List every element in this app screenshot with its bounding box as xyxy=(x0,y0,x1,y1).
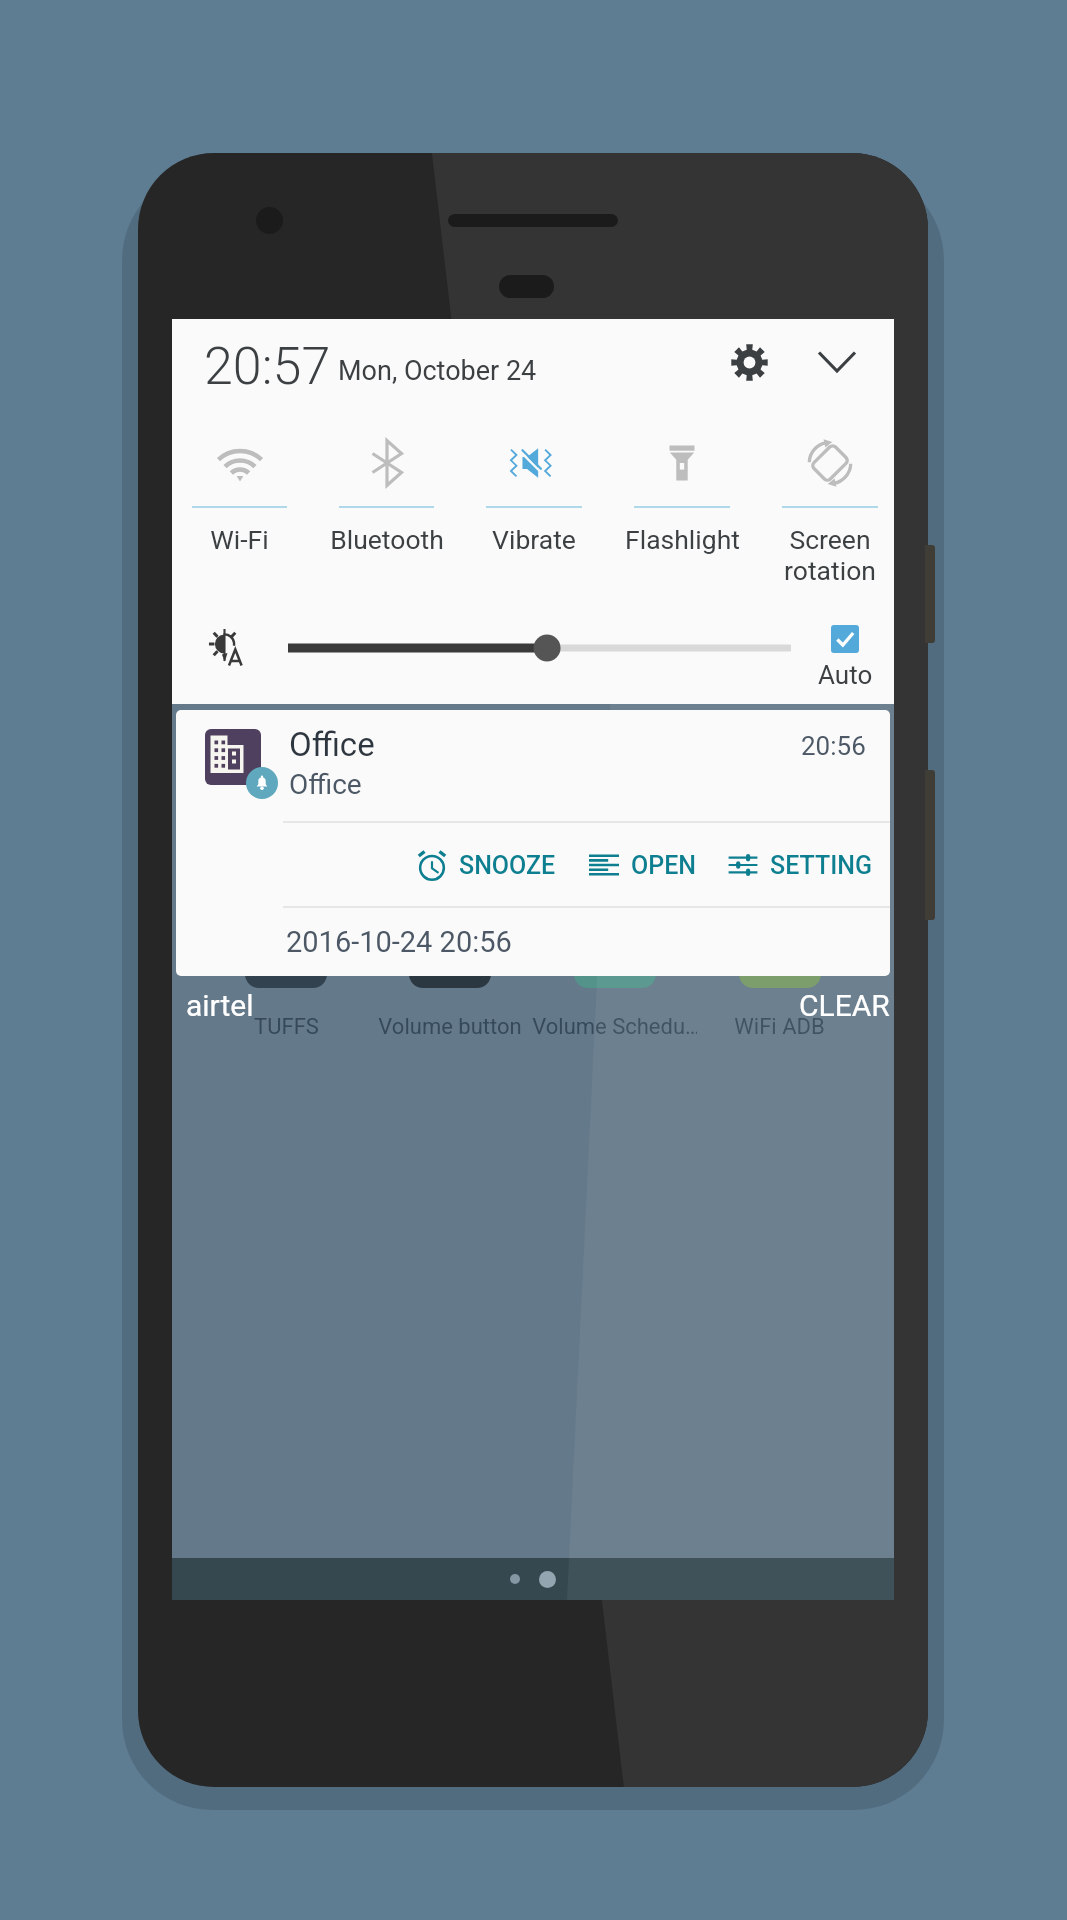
staticText: Vibrate xyxy=(492,524,576,555)
staticText: CLEAR xyxy=(799,988,890,1023)
button[interactable]: Bluetooth xyxy=(313,439,460,609)
button[interactable]: Screen rotation xyxy=(756,439,904,609)
staticText: airtel xyxy=(186,988,254,1023)
staticText: TUFFS xyxy=(254,1014,319,1040)
staticText: 20:56 xyxy=(801,731,866,761)
staticText: Office xyxy=(289,768,362,801)
button[interactable]: Flashlight xyxy=(608,439,756,609)
staticText: Bluetooth xyxy=(330,524,444,555)
button[interactable]: Auto xyxy=(797,609,893,697)
button[interactable]: Auto brightness xyxy=(192,609,258,689)
staticText: Wi-Fi xyxy=(210,524,269,555)
button[interactable]: Collapse shade xyxy=(807,332,867,392)
button[interactable]: Wi-Fi xyxy=(166,439,313,609)
staticText: Office xyxy=(289,725,375,764)
button[interactable]: Volume Schedu… xyxy=(532,962,697,1040)
staticText: Flashlight xyxy=(625,524,740,555)
button[interactable]: OPEN xyxy=(589,850,697,880)
staticText: OPEN xyxy=(631,851,697,880)
staticText: SETTING xyxy=(770,851,873,880)
staticText: Volume Schedu… xyxy=(532,1014,697,1040)
button[interactable]: TUFFS xyxy=(204,962,368,1040)
button[interactable]: Volume button xyxy=(368,962,532,1040)
staticText: WiFi ADB xyxy=(734,1014,825,1040)
button[interactable]: SETTING xyxy=(728,850,873,880)
staticText: Mon, October 24 xyxy=(338,355,537,387)
button[interactable]: SNOOZE xyxy=(417,850,556,880)
staticText: 20:57 xyxy=(204,336,331,396)
button[interactable]: Vibrate xyxy=(460,439,608,609)
button[interactable]: Settings xyxy=(719,332,779,392)
button[interactable]: Brightness xyxy=(284,615,795,681)
button[interactable]: WiFi ADB xyxy=(697,962,862,1040)
staticText: Screen rotation xyxy=(784,524,876,587)
staticText: SNOOZE xyxy=(459,851,556,880)
staticText: Volume button xyxy=(378,1014,522,1040)
staticText: Auto xyxy=(818,660,873,690)
staticText: 2016-10-24 20:56 xyxy=(286,925,512,959)
